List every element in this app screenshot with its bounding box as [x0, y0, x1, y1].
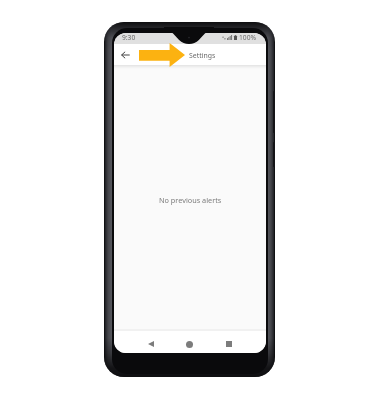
staticText: 9:30: [122, 33, 136, 42]
staticText: No previous alerts: [159, 195, 222, 205]
staticText: Settings: [189, 51, 216, 60]
button[interactable]: Back: [118, 47, 133, 62]
button[interactable]: Home: [178, 335, 201, 353]
button[interactable]: Back: [139, 335, 162, 353]
staticText: 100%: [239, 33, 257, 42]
button[interactable]: Recent apps: [217, 335, 240, 353]
